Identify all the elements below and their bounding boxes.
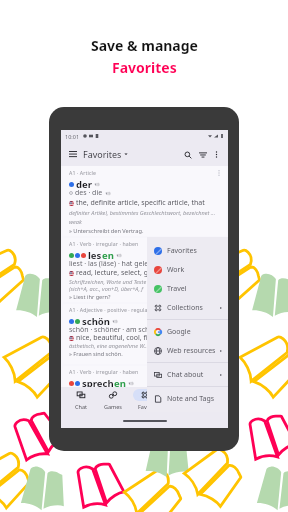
button[interactable]: Filter	[195, 147, 210, 162]
staticText: schön · schöner · am schö	[69, 325, 154, 335]
button[interactable]: Note and Tags	[147, 389, 228, 408]
staticText: sprech	[82, 377, 114, 387]
button[interactable]: Chat about	[147, 365, 228, 384]
button[interactable]: A1 · Verb · irregular · haben	[63, 238, 226, 302]
staticText: definiter Artikel, bestimmtes Geschlecht…	[69, 209, 216, 217]
staticText: weak	[69, 218, 82, 226]
staticText: schön	[82, 315, 110, 328]
staticText: Web resources	[167, 346, 216, 356]
staticText: Google	[167, 327, 191, 337]
staticText: A1 · Article	[69, 169, 96, 176]
button[interactable]: Menu	[66, 147, 80, 161]
staticText: Favor	[138, 403, 153, 410]
staticText: A1 · Verb · irregular · haben	[69, 240, 139, 247]
button[interactable]: Travel	[147, 279, 228, 298]
staticText: (sich+A, acc., von+D, über+A, f	[69, 285, 144, 293]
staticText: Favorites	[167, 246, 197, 256]
button[interactable]: More	[196, 389, 220, 410]
button[interactable]: Search	[180, 147, 195, 162]
staticText: Travel	[167, 284, 187, 294]
staticText: » Frauen sind schön.	[69, 350, 123, 358]
staticText: Games	[104, 403, 122, 410]
button[interactable]: Chat	[69, 389, 93, 410]
button[interactable]: Web resources	[147, 341, 228, 360]
staticText: Chat	[75, 403, 87, 410]
staticText: Work	[167, 265, 185, 275]
staticText: the, definite article, specific article,…	[76, 198, 205, 208]
staticText: nice, beautiful, cool, fits	[76, 333, 154, 343]
staticText: Favorites	[112, 58, 177, 77]
button[interactable]: A1 · Article	[63, 166, 226, 236]
staticText: read, lecture, select, gle	[76, 268, 154, 278]
staticText: » Liest ihr gern?	[69, 293, 111, 301]
button[interactable]: A1 · Adjective · positive · regular	[63, 304, 226, 364]
staticText: Chat about	[167, 370, 204, 380]
staticText: en	[102, 249, 114, 262]
staticText: Note and Tags	[167, 394, 215, 404]
staticText: liest · las (läse) · hat geles	[69, 259, 152, 269]
staticText: der	[76, 178, 92, 191]
staticText: Favorites	[83, 148, 122, 160]
button[interactable]: Work	[147, 260, 228, 279]
button[interactable]: Favorites	[147, 241, 228, 260]
staticText: ästhetisch, eine angenehme W...	[69, 342, 149, 350]
staticText: Collections	[167, 303, 203, 313]
staticText: A1 · Verb · irregular · haben	[69, 368, 139, 375]
button[interactable]: Favorites	[83, 146, 128, 162]
staticText: Save & manage	[91, 36, 198, 55]
button[interactable]: Google	[147, 322, 228, 341]
staticText: » Unterschreibt den Vertrag.	[69, 227, 144, 235]
staticText: A1 · Adjective · positive · regular	[69, 306, 150, 313]
staticText: en	[114, 377, 126, 387]
staticText: Schriftzeichen, Worte und Texte	[69, 278, 147, 286]
staticText: les	[88, 249, 102, 262]
button[interactable]: Words	[164, 389, 188, 410]
button[interactable]: More options	[210, 148, 223, 161]
button[interactable]: Collections	[147, 298, 228, 317]
staticText: des · die	[75, 188, 103, 198]
button[interactable]: Games	[101, 389, 125, 410]
staticText: 10:01	[65, 133, 80, 140]
button[interactable]: A1 · Verb · irregular · haben	[63, 366, 226, 387]
button[interactable]: Favor	[133, 389, 157, 410]
